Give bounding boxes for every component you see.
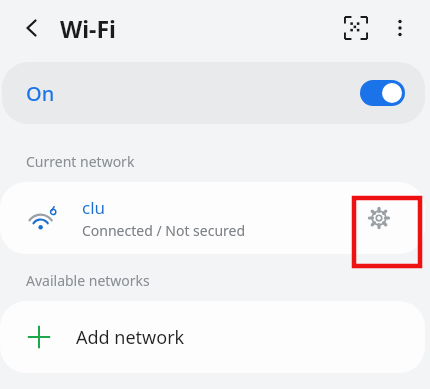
button[interactable]: Add network	[0, 301, 425, 373]
staticText: Wi-Fi	[60, 13, 116, 44]
button[interactable]: On	[2, 62, 425, 124]
staticText: On	[26, 80, 55, 107]
staticText: Current network	[26, 152, 135, 171]
staticText: Available networks	[26, 271, 150, 290]
button[interactable]: Scan QR code	[336, 8, 376, 48]
staticText: clu	[82, 196, 106, 219]
button[interactable]: More options	[380, 8, 420, 48]
button[interactable]: Network settings	[358, 197, 400, 239]
staticText: Add network	[76, 325, 185, 350]
button[interactable]: clu	[0, 182, 425, 254]
button[interactable]: Back	[12, 8, 52, 48]
staticText: Connected / Not secured	[82, 221, 246, 240]
